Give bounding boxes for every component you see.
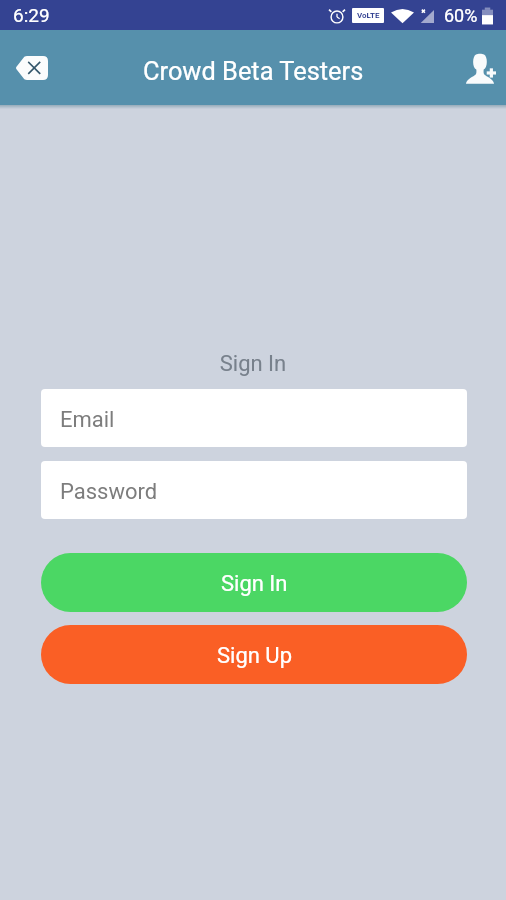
staticText: Crowd Beta Testers: [143, 56, 364, 86]
staticText: 6:29: [13, 4, 50, 26]
staticText: Password: [60, 479, 158, 505]
staticText: Sign Up: [217, 643, 292, 669]
staticText: VoLTE: [357, 11, 380, 20]
button[interactable]: Add user: [452, 40, 506, 96]
staticText: Sign In: [221, 571, 288, 597]
button[interactable]: Password: [41, 461, 467, 519]
staticText: Sign In: [0, 351, 506, 377]
button[interactable]: Email: [41, 389, 467, 447]
button[interactable]: Sign Up: [41, 625, 467, 684]
staticText: Email: [60, 407, 115, 433]
button[interactable]: Back: [0, 40, 64, 96]
staticText: 60%: [444, 5, 478, 26]
button[interactable]: Sign In: [41, 553, 467, 612]
